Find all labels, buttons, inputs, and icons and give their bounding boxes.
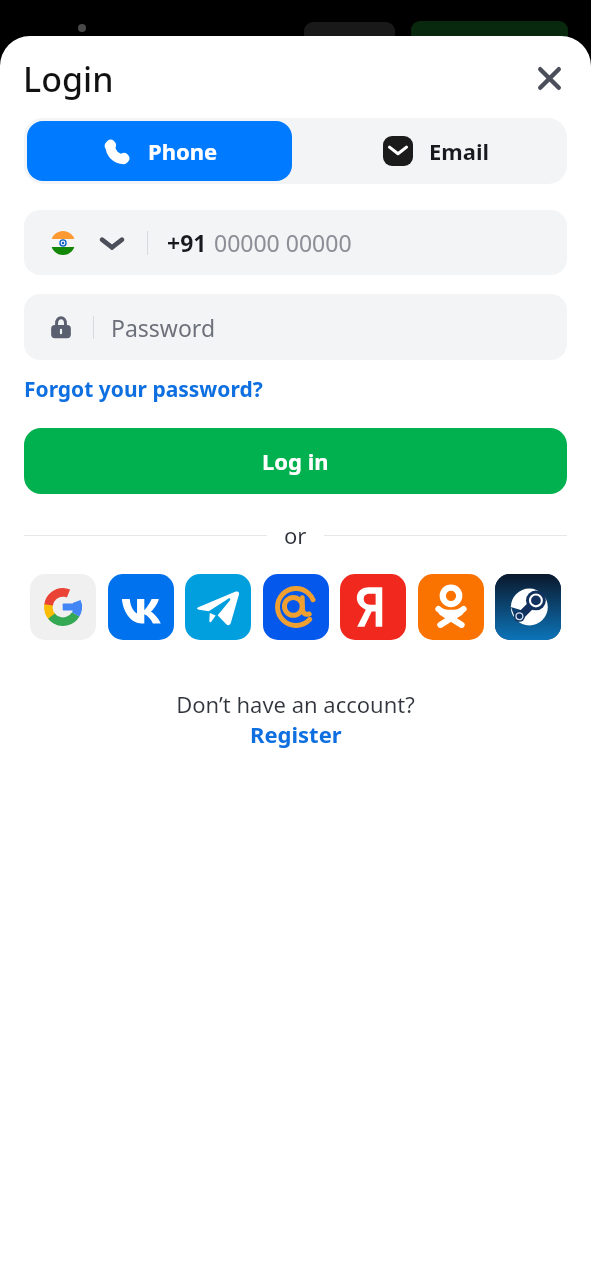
button[interactable]: Sign in with Google [30, 574, 96, 640]
button[interactable]: Sign in with Telegram [185, 574, 251, 640]
staticText: Register [250, 719, 342, 749]
button[interactable]: Email [295, 118, 567, 184]
staticText: Email [429, 136, 490, 166]
button[interactable]: Register [250, 719, 342, 749]
staticText: Login [23, 56, 114, 102]
staticText: Don’t have an account? [176, 689, 415, 719]
button[interactable]: Close [527, 56, 571, 100]
button[interactable]: Log in [24, 428, 567, 494]
staticText: Phone [148, 136, 218, 166]
staticText: Password [111, 312, 216, 343]
staticText: Forgot your password? [24, 375, 263, 404]
button[interactable]: +91 [24, 210, 567, 275]
button[interactable]: Sign in with VK [108, 574, 174, 640]
staticText: or [284, 520, 307, 550]
button[interactable]: Sign in with Yandex [340, 574, 406, 640]
button[interactable]: Sign in with Odnoklassniki [418, 574, 484, 640]
staticText: Log in [262, 446, 329, 476]
button[interactable]: Phone [27, 121, 292, 181]
button[interactable]: Forgot your password? [24, 375, 263, 404]
staticText: 00000 00000 [214, 227, 352, 258]
button[interactable]: Sign in with Mail [263, 574, 329, 640]
button[interactable]: Sign in with Steam [495, 574, 561, 640]
staticText: +91 [167, 227, 207, 258]
button[interactable]: Password [24, 294, 567, 360]
